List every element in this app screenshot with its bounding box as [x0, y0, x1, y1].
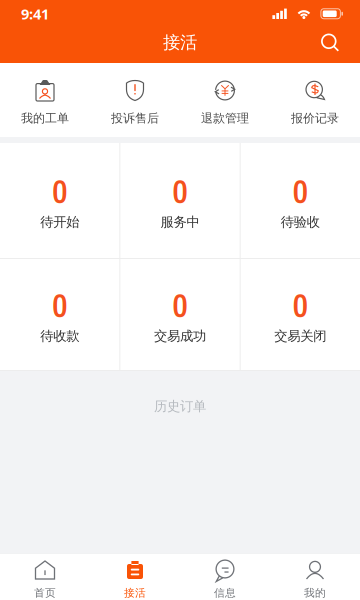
button[interactable]: 搜索 [309, 22, 360, 63]
button[interactable]: 0 [241, 259, 360, 370]
staticText: 待验收 [281, 214, 320, 230]
staticText: 接活 [163, 32, 197, 53]
staticText: 接活 [124, 586, 146, 600]
staticText: 0 [52, 169, 67, 214]
staticText: 0 [52, 283, 67, 328]
staticText: 退款管理 [201, 111, 249, 126]
staticText: 0 [172, 169, 187, 214]
staticText: 历史订单 [154, 398, 206, 414]
button[interactable]: 我的 [270, 553, 360, 600]
button[interactable]: 0 [0, 143, 119, 258]
staticText: 交易成功 [154, 328, 206, 344]
staticText: 待开始 [40, 214, 79, 230]
staticText: 待收款 [40, 328, 79, 344]
button[interactable]: 我的工单 [0, 63, 90, 137]
button[interactable]: 首页 [0, 553, 90, 600]
staticText: 我的 [304, 586, 326, 600]
button[interactable]: 接活 [90, 553, 180, 600]
staticText: 服务中 [160, 214, 199, 230]
staticText: 交易关闭 [274, 328, 326, 344]
button[interactable]: 报价记录 [270, 63, 360, 137]
button[interactable]: 0 [0, 259, 119, 370]
button[interactable]: 0 [241, 143, 360, 258]
button[interactable]: 0 [120, 143, 240, 258]
staticText: 首页 [34, 586, 56, 600]
staticText: 9:41 [21, 4, 49, 23]
button[interactable]: 信息 [180, 553, 270, 600]
staticText: 报价记录 [291, 111, 339, 126]
staticText: 0 [293, 169, 308, 214]
staticText: 我的工单 [21, 111, 69, 126]
staticText: 0 [172, 283, 187, 328]
button[interactable]: 退款管理 [180, 63, 270, 137]
staticText: 0 [293, 283, 308, 328]
staticText: 信息 [214, 586, 236, 600]
button[interactable]: 0 [120, 259, 240, 370]
button[interactable]: 投诉售后 [90, 63, 180, 137]
staticText: 投诉售后 [111, 111, 159, 126]
